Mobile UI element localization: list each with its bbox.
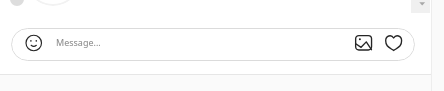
- button[interactable]: Like: [385, 35, 402, 51]
- staticText: Message...: [56, 36, 101, 48]
- button[interactable]: Scroll down: [411, 0, 430, 13]
- button[interactable]: [11, 28, 415, 61]
- button[interactable]: Emoji: [25, 34, 43, 52]
- button[interactable]: Add photo: [355, 35, 373, 51]
